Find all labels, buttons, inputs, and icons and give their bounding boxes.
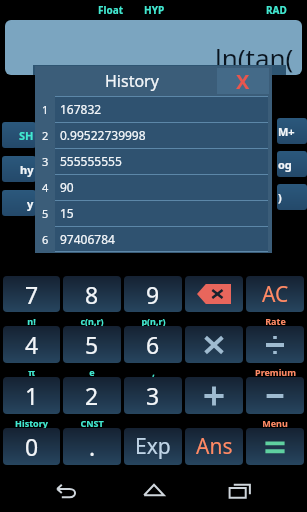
staticText: 555555555 bbox=[60, 153, 122, 169]
staticText: 1 bbox=[42, 102, 49, 117]
staticText: Exp bbox=[135, 432, 171, 461]
button[interactable]: . bbox=[63, 428, 121, 465]
staticText: og bbox=[278, 157, 292, 172]
button[interactable]: Home bbox=[134, 475, 174, 505]
button[interactable]: og bbox=[277, 151, 307, 177]
staticText: hy bbox=[20, 162, 34, 177]
staticText: SH bbox=[19, 128, 34, 143]
button[interactable]: Exp bbox=[124, 428, 182, 465]
staticText: 8 bbox=[85, 279, 99, 310]
staticText: y bbox=[27, 196, 34, 211]
staticText: 6 bbox=[42, 232, 49, 247]
staticText: ) bbox=[278, 190, 282, 205]
button[interactable]: 5 bbox=[63, 326, 121, 363]
staticText: e bbox=[89, 366, 95, 377]
button[interactable]: 8 bbox=[63, 276, 121, 312]
staticText: 9 bbox=[146, 279, 160, 310]
staticText: 2 bbox=[42, 128, 49, 143]
button[interactable] bbox=[185, 276, 243, 312]
staticText: 97406784 bbox=[60, 231, 115, 247]
button[interactable]: 5 bbox=[35, 200, 272, 226]
staticText: HYP bbox=[144, 3, 165, 17]
staticText: 4 bbox=[25, 329, 39, 360]
button[interactable]: 7 bbox=[3, 276, 60, 312]
button[interactable]: 4 bbox=[3, 326, 60, 363]
button[interactable] bbox=[246, 377, 304, 414]
staticText: 0 bbox=[25, 431, 39, 462]
button[interactable]: 2 bbox=[63, 377, 121, 414]
staticText: 4 bbox=[42, 180, 49, 195]
staticText: History bbox=[105, 70, 159, 92]
button[interactable]: Recents bbox=[220, 475, 260, 505]
button[interactable] bbox=[246, 326, 304, 363]
button[interactable]: 6 bbox=[35, 226, 272, 252]
button[interactable]: 4 bbox=[35, 174, 272, 200]
button[interactable]: 3 bbox=[35, 148, 272, 174]
button[interactable]: Ans bbox=[185, 428, 243, 465]
staticText: Rate bbox=[265, 315, 286, 326]
button[interactable]: ) bbox=[277, 184, 307, 210]
button[interactable]: AC bbox=[246, 276, 304, 312]
button[interactable]: 1 bbox=[35, 96, 272, 122]
staticText: M+ bbox=[278, 124, 295, 139]
button[interactable] bbox=[185, 377, 243, 414]
button[interactable]: Close bbox=[217, 68, 269, 94]
staticText: 2 bbox=[85, 380, 99, 411]
staticText: 3 bbox=[146, 380, 160, 411]
staticText: Premium bbox=[255, 366, 296, 377]
button[interactable]: 1 bbox=[3, 377, 60, 414]
button[interactable]: SH bbox=[2, 122, 36, 148]
staticText: 0.99522739998 bbox=[60, 127, 146, 143]
button[interactable]: 0 bbox=[3, 428, 60, 465]
staticText: . bbox=[89, 431, 96, 462]
staticText: Ans bbox=[196, 432, 233, 461]
button[interactable]: ln(tan( bbox=[5, 20, 302, 75]
staticText: , bbox=[152, 366, 155, 377]
staticText: 3 bbox=[42, 154, 49, 169]
staticText: π bbox=[28, 366, 35, 377]
staticText: CNST bbox=[80, 417, 104, 428]
staticText: ln(tan( bbox=[215, 40, 294, 75]
staticText: 5 bbox=[85, 329, 99, 360]
staticText: RAD bbox=[266, 3, 287, 17]
button[interactable]: y bbox=[2, 190, 36, 216]
staticText: n! bbox=[27, 315, 36, 326]
staticText: 15 bbox=[60, 205, 74, 221]
button[interactable]: 6 bbox=[124, 326, 182, 363]
button[interactable]: M+ bbox=[277, 118, 307, 144]
button[interactable] bbox=[185, 326, 243, 363]
staticText: X bbox=[236, 68, 250, 94]
staticText: c(n,r) bbox=[80, 315, 104, 326]
staticText: 1 bbox=[25, 380, 39, 411]
button[interactable]: 3 bbox=[124, 377, 182, 414]
staticText: AC bbox=[262, 280, 289, 309]
staticText: Menu bbox=[262, 417, 288, 428]
staticText: 6 bbox=[146, 329, 160, 360]
button[interactable]: hy bbox=[2, 156, 36, 182]
staticText: History bbox=[15, 417, 48, 428]
staticText: Float bbox=[98, 3, 124, 17]
button[interactable]: 9 bbox=[124, 276, 182, 312]
staticText: 167832 bbox=[60, 101, 102, 117]
button[interactable] bbox=[246, 428, 304, 465]
staticText: p(n,r) bbox=[141, 315, 166, 326]
staticText: 7 bbox=[25, 279, 39, 310]
button[interactable]: 2 bbox=[35, 122, 272, 148]
staticText: 5 bbox=[42, 206, 49, 221]
staticText: 90 bbox=[60, 179, 74, 195]
button[interactable]: Back bbox=[47, 475, 87, 505]
